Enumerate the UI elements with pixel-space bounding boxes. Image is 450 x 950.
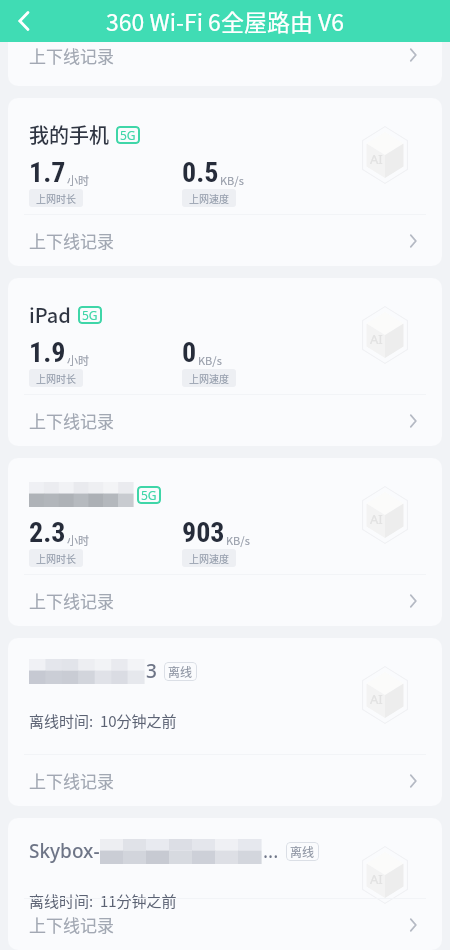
staticText: 上网速度	[189, 371, 229, 385]
staticText: 小时	[67, 352, 89, 368]
staticText: 2.3	[29, 516, 66, 549]
button[interactable]: Back	[5, 2, 43, 40]
staticText: 1.9	[29, 336, 66, 369]
staticText: 5G	[120, 127, 136, 143]
staticText: 5G	[82, 307, 98, 323]
staticText: 上下线记录	[29, 768, 114, 793]
staticText: KB/s	[226, 532, 250, 548]
staticText: 上下线记录	[29, 588, 114, 613]
staticText: 0.5	[182, 156, 219, 189]
staticText: 上网时长	[36, 191, 76, 205]
staticText: Skybox-	[29, 838, 100, 864]
staticText: AI	[370, 150, 383, 168]
staticText: 上下线记录	[29, 228, 114, 253]
staticText: ...	[263, 838, 279, 864]
button[interactable]: 上下线记录	[8, 42, 442, 77]
staticText: 离线	[168, 663, 193, 680]
staticText: 360 Wi-Fi 6全屋路由 V6	[106, 4, 345, 37]
staticText: 上网速度	[189, 191, 229, 205]
staticText: 上下线记录	[29, 43, 114, 68]
staticText: 小时	[67, 172, 89, 188]
staticText: 我的手机	[29, 120, 109, 149]
button[interactable]: 上下线记录	[8, 395, 442, 446]
staticText: 3	[146, 658, 157, 684]
staticText: 小时	[67, 532, 89, 548]
staticText: AI	[370, 870, 383, 888]
staticText: AI	[370, 690, 383, 708]
staticText: AI	[370, 330, 383, 348]
staticText: 上网速度	[189, 551, 229, 565]
staticText: 上下线记录	[29, 408, 114, 433]
staticText: KB/s	[198, 352, 222, 368]
staticText: 上网时长	[36, 371, 76, 385]
button[interactable]: 上下线记录	[8, 899, 442, 950]
staticText: AI	[370, 510, 383, 528]
staticText: 上下线记录	[29, 912, 114, 937]
button[interactable]: 上下线记录	[8, 575, 442, 626]
staticText: 1.7	[29, 156, 66, 189]
staticText: 903	[182, 516, 225, 549]
staticText: iPad	[29, 300, 71, 329]
staticText: 5G	[141, 487, 157, 503]
button[interactable]: 上下线记录	[8, 215, 442, 266]
staticText: 离线	[290, 843, 315, 860]
staticText: 离线时间: 11分钟之前	[29, 890, 177, 912]
staticText: 0	[182, 336, 197, 369]
staticText: KB/s	[220, 172, 244, 188]
staticText: 上网时长	[36, 551, 76, 565]
button[interactable]: 上下线记录	[8, 755, 442, 806]
staticText: 离线时间: 10分钟之前	[29, 710, 177, 732]
